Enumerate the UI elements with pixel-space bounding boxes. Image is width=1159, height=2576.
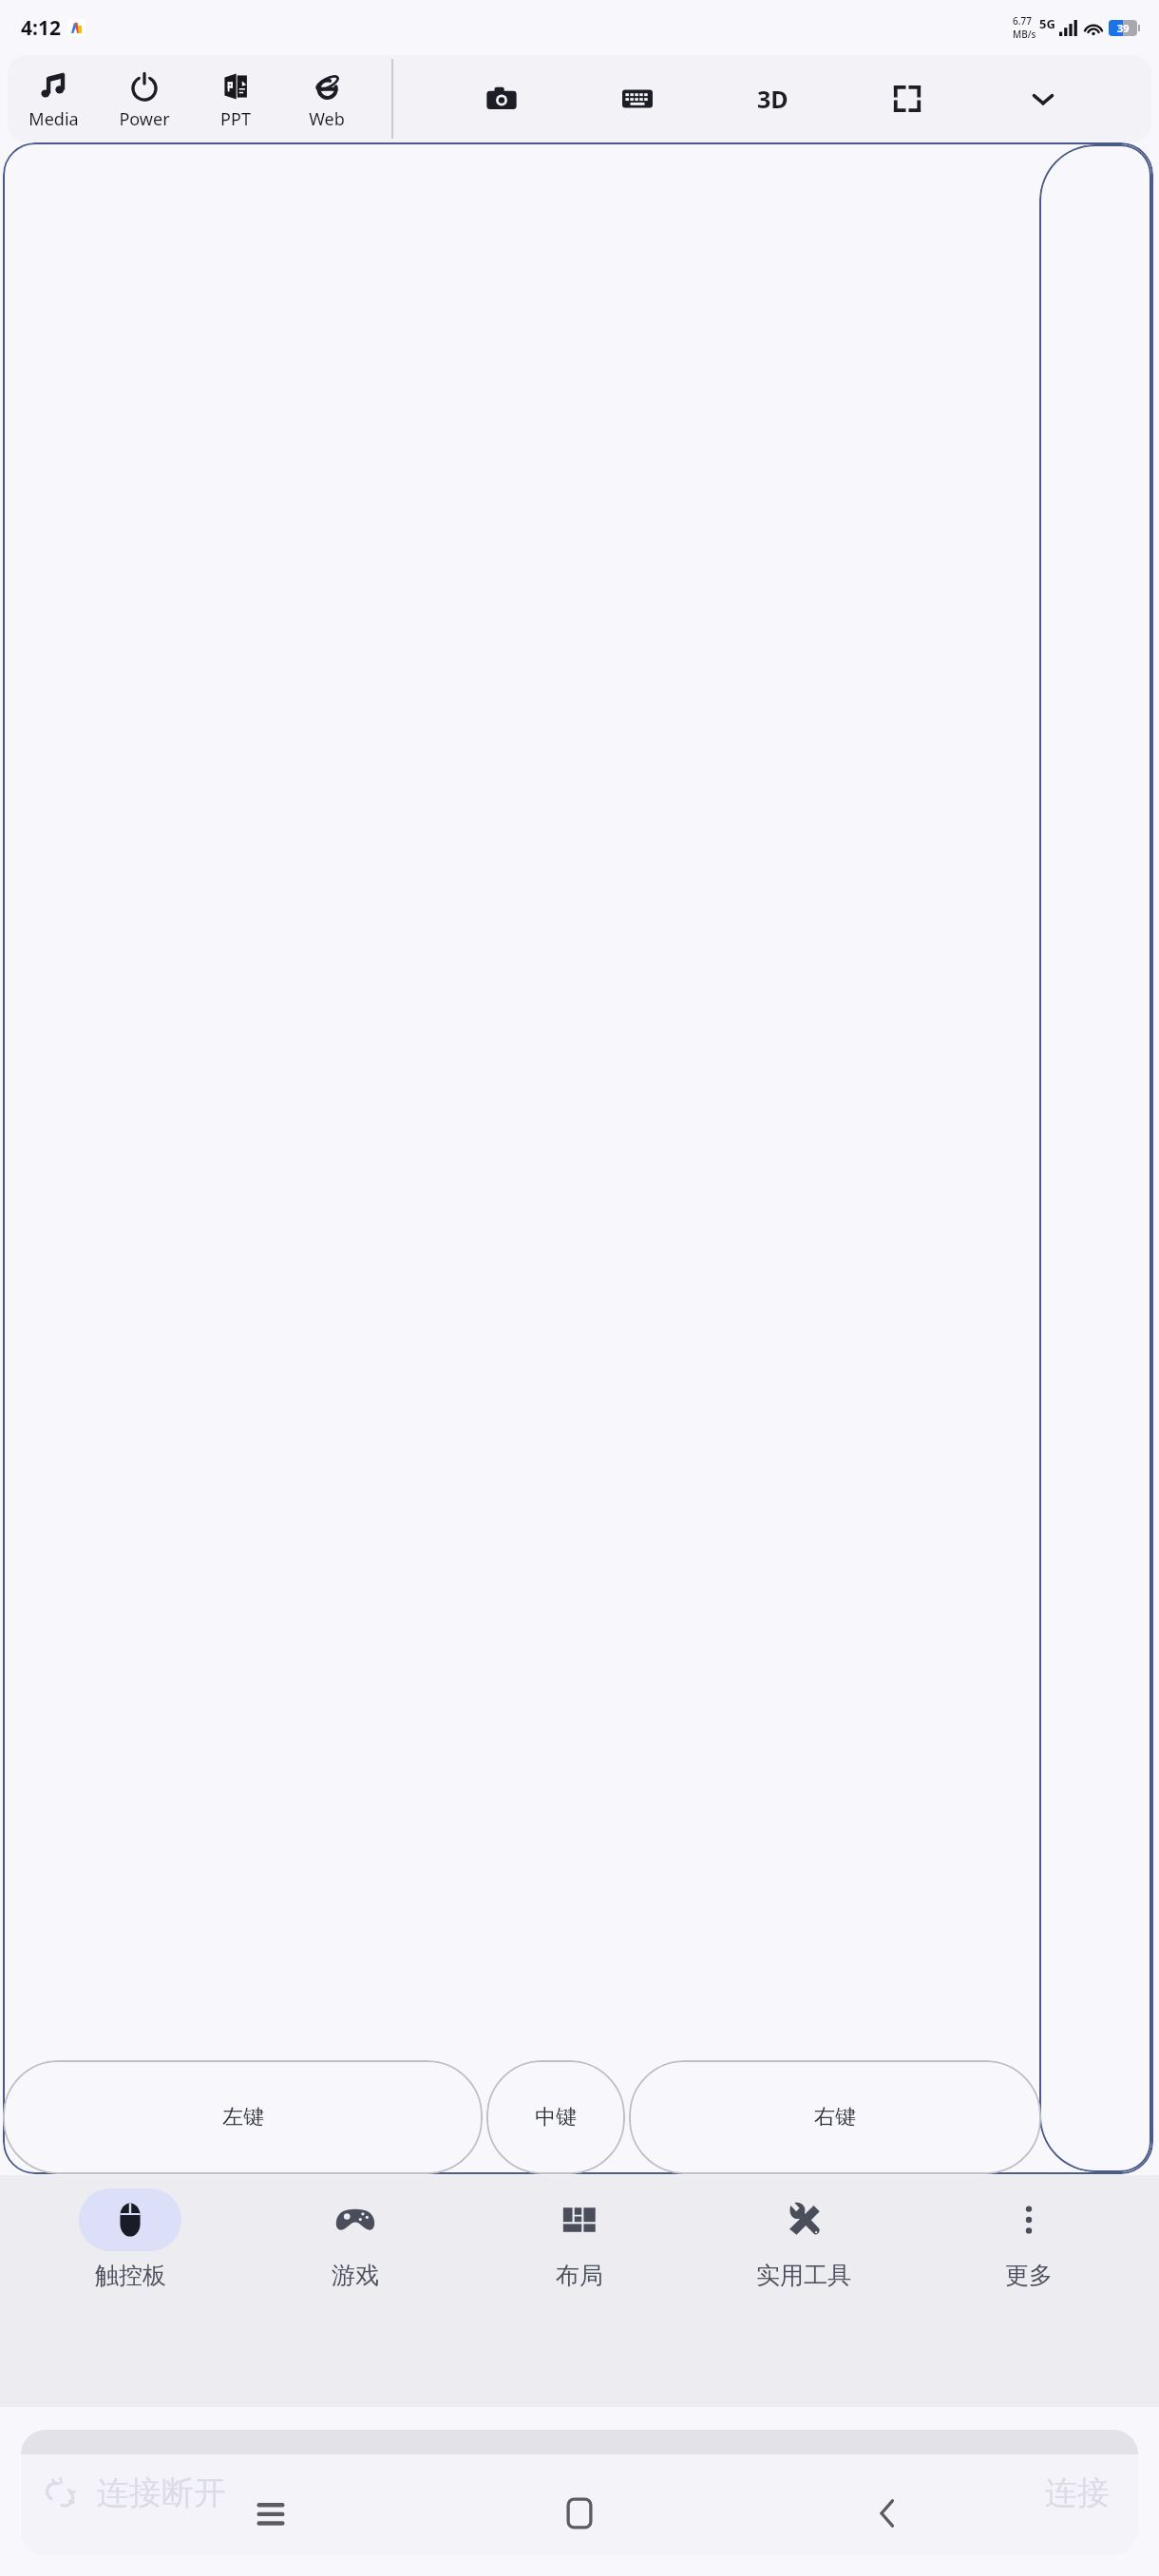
button[interactable]: Media <box>8 55 99 142</box>
button[interactable]: Keyboard <box>611 72 664 125</box>
staticText: 右键 <box>814 2104 856 2131</box>
button[interactable]: Touchpad <box>3 142 1153 2174</box>
staticText: 连接 <box>1045 2472 1110 2513</box>
button[interactable]: 连接断开 <box>21 2430 1138 2555</box>
button[interactable]: 实用工具 <box>710 2188 898 2290</box>
button[interactable]: PPT <box>190 55 281 142</box>
button[interactable]: 右键 <box>629 2060 1041 2174</box>
staticText: 39 <box>1117 21 1130 35</box>
staticText: 左键 <box>222 2104 264 2131</box>
staticText: 连接断开 <box>97 2472 226 2513</box>
staticText: 更多 <box>1005 2261 1053 2290</box>
staticText: MB/s <box>1013 28 1036 41</box>
button[interactable]: 中键 <box>486 2060 625 2174</box>
staticText: 触控板 <box>95 2261 166 2290</box>
staticText: PPT <box>220 107 251 131</box>
button[interactable]: Back <box>850 2475 926 2551</box>
staticText: 中键 <box>535 2104 577 2131</box>
button[interactable]: 3D <box>746 72 799 125</box>
button[interactable]: 触控板 <box>36 2188 224 2290</box>
button[interactable]: Fullscreen <box>881 72 934 125</box>
button[interactable]: Scroll bar <box>1039 144 1151 2172</box>
button[interactable]: 更多 <box>935 2188 1123 2290</box>
button[interactable]: 连接 <box>1045 2472 1110 2513</box>
button[interactable]: Web <box>281 55 372 142</box>
staticText: Media <box>28 107 79 131</box>
button[interactable]: 左键 <box>3 2060 483 2174</box>
staticText: 游戏 <box>332 2261 379 2290</box>
staticText: Power <box>119 107 170 131</box>
staticText: 实用工具 <box>756 2261 851 2290</box>
button[interactable]: Home <box>541 2475 617 2551</box>
button[interactable]: 游戏 <box>261 2188 449 2290</box>
staticText: 5G <box>1039 15 1055 32</box>
button[interactable]: Screenshot <box>475 72 528 125</box>
staticText: 6.77 <box>1013 14 1032 28</box>
button[interactable]: Recents <box>233 2475 309 2551</box>
staticText: 3D <box>757 83 788 115</box>
button[interactable]: Power <box>99 55 190 142</box>
staticText: 布局 <box>556 2261 603 2290</box>
button[interactable]: Collapse <box>1016 72 1070 125</box>
button[interactable]: 布局 <box>485 2188 674 2290</box>
staticText: 4:12 <box>21 14 61 42</box>
staticText: Web <box>309 107 345 131</box>
